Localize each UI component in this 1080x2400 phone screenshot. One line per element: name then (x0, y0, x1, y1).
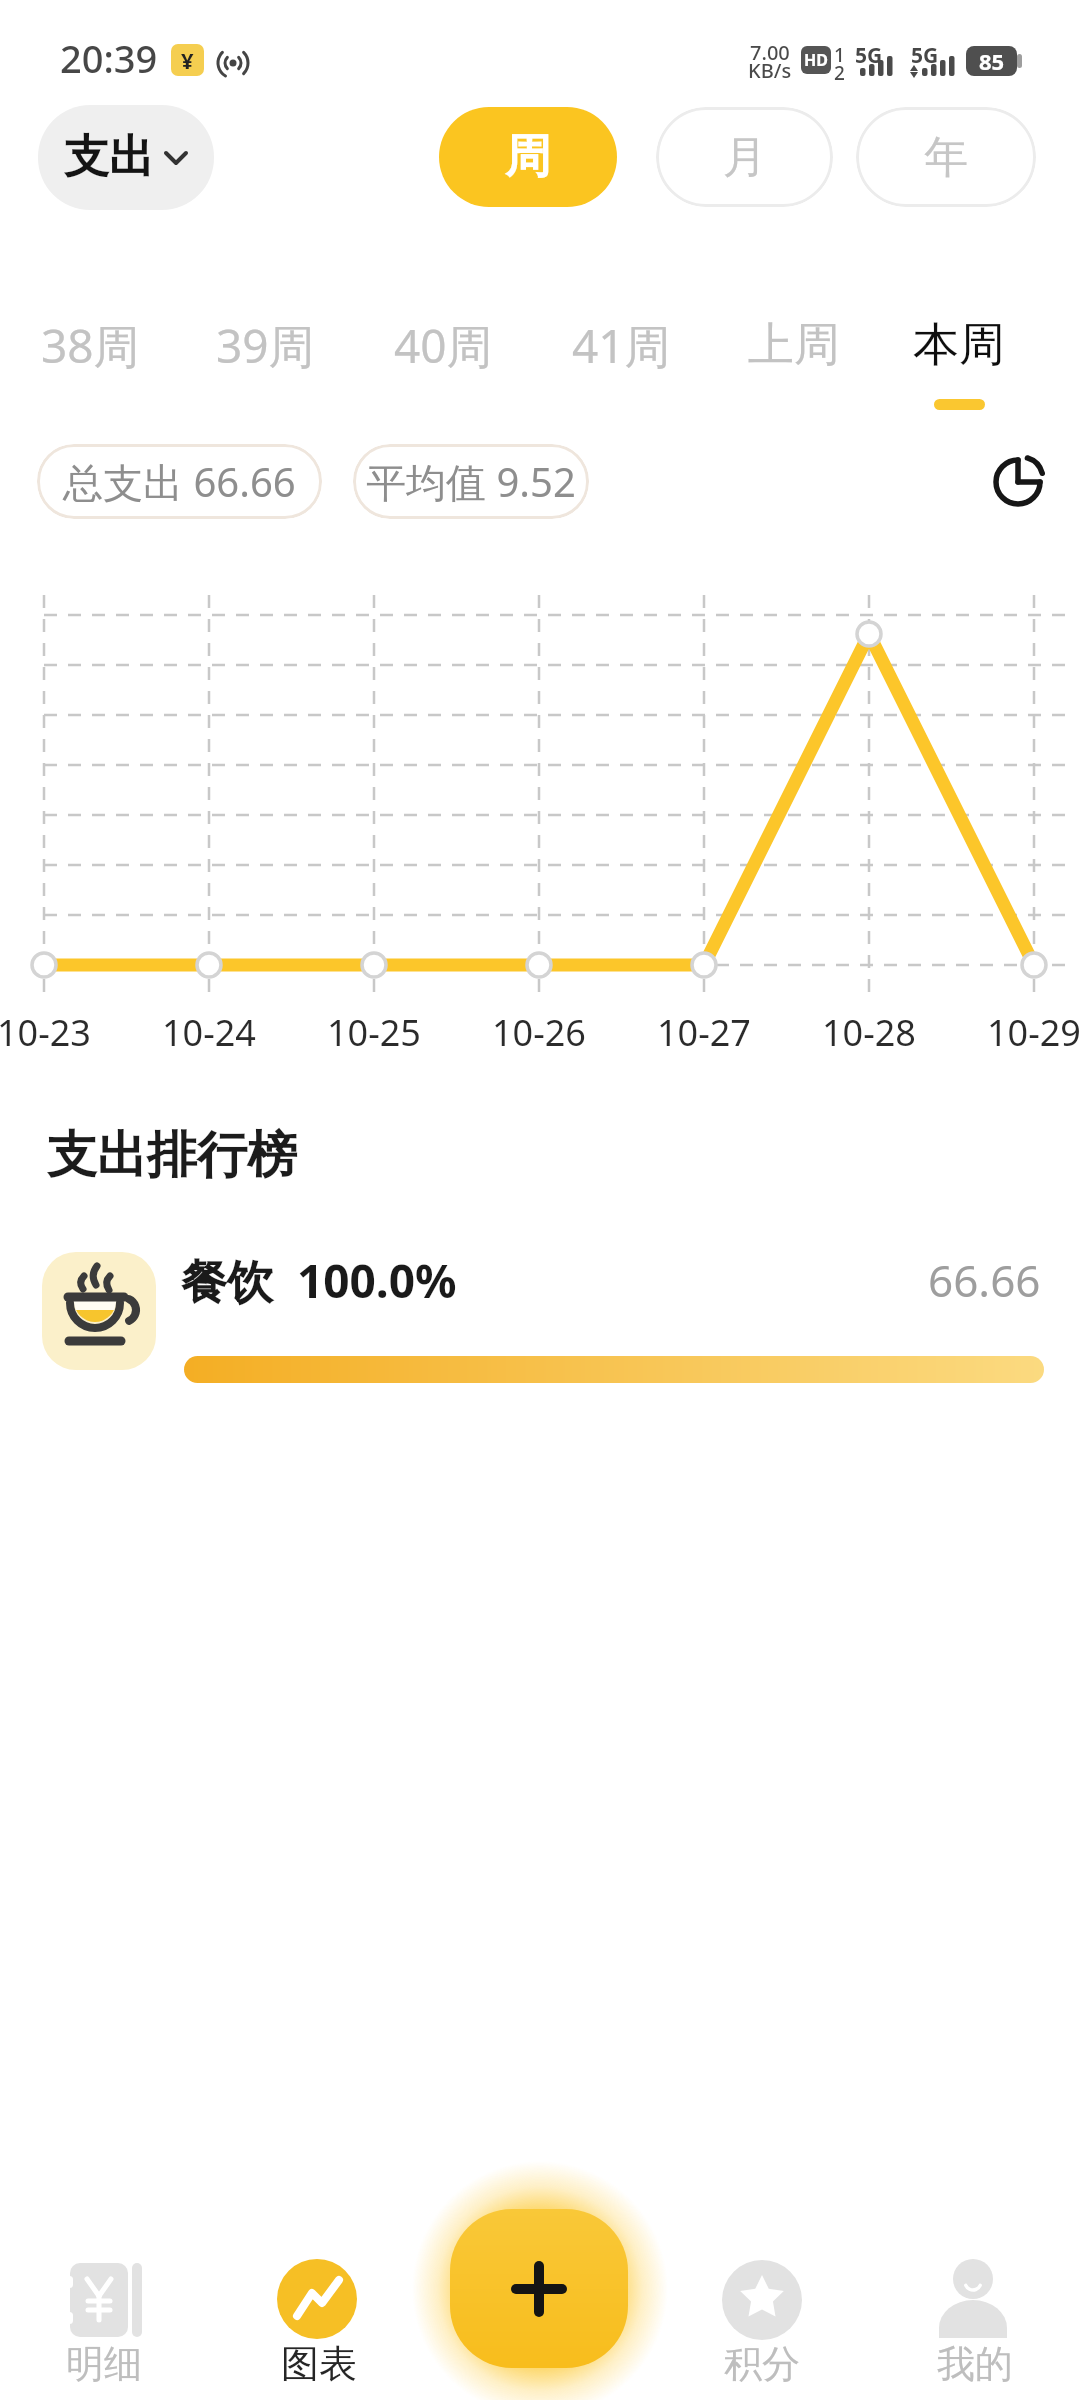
staticText: 餐饮 100.0% (181, 1249, 457, 1312)
staticText: 上周 (748, 316, 840, 374)
button[interactable]: 39周 (175, 305, 355, 385)
staticText: 总支出 66.66 (63, 454, 296, 509)
button[interactable] (700, 2250, 830, 2395)
staticText: KB/s (748, 57, 792, 79)
staticText: 41周 (572, 314, 671, 377)
staticText: 10-25 (327, 1008, 421, 1057)
button[interactable]: 月 (656, 107, 833, 207)
staticText: 10-28 (822, 1008, 916, 1057)
staticText: 明细 (66, 2340, 142, 2388)
staticText: 10-24 (162, 1008, 256, 1057)
button[interactable] (250, 2250, 385, 2395)
staticText: HD (804, 49, 828, 71)
button[interactable] (40, 1250, 1044, 1390)
staticText: 5G (855, 41, 883, 63)
staticText: 1 (834, 42, 845, 62)
staticText: 20:39 (60, 32, 158, 84)
button[interactable] (450, 2209, 628, 2368)
button[interactable] (910, 2250, 1040, 2395)
button[interactable] (40, 2250, 170, 2395)
staticText: 7.00 (750, 39, 790, 61)
staticText: 平均值 9.52 (366, 454, 576, 509)
staticText: 39周 (216, 314, 315, 377)
staticText: 图表 (281, 2340, 357, 2388)
button[interactable]: 上周 (714, 305, 874, 385)
button[interactable]: 支出 (38, 105, 214, 210)
button[interactable]: 本周 (879, 305, 1039, 385)
staticText: 月 (723, 130, 767, 185)
staticText: 85 (979, 46, 1005, 76)
button[interactable]: 总支出 66.66 (37, 444, 322, 519)
button[interactable]: 平均值 9.52 (353, 444, 589, 519)
staticText: 10-27 (657, 1008, 751, 1057)
staticText: 40周 (394, 314, 493, 377)
staticText: 我的 (937, 2340, 1013, 2388)
staticText: 66.66 (928, 1250, 1041, 1310)
staticText: 本周 (913, 316, 1005, 374)
staticText: 周 (505, 128, 551, 186)
button[interactable]: 40周 (353, 305, 533, 385)
button[interactable]: 41周 (531, 305, 711, 385)
staticText: 38周 (41, 314, 140, 377)
staticText: 年 (924, 130, 968, 185)
staticText: ¥ (181, 45, 194, 75)
staticText: 支出排行榜 (47, 1124, 297, 1187)
staticText: 积分 (724, 2340, 800, 2388)
button[interactable]: 年 (856, 107, 1036, 207)
button[interactable]: 周 (439, 107, 617, 207)
staticText: 2 (834, 60, 845, 80)
staticText: 10-29 (987, 1008, 1080, 1057)
staticText: 支出 (64, 129, 154, 186)
staticText: 10-23 (0, 1008, 91, 1057)
button[interactable] (993, 455, 1045, 507)
staticText: 5G (911, 41, 939, 63)
staticText: 10-26 (492, 1008, 586, 1057)
button[interactable]: 38周 (0, 305, 180, 385)
